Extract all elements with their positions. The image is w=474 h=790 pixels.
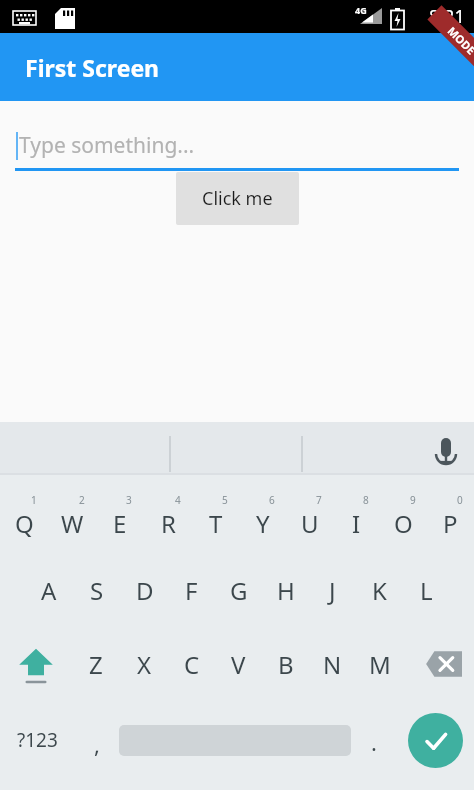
staticText: V [231, 648, 246, 681]
staticText: 4 [175, 493, 181, 507]
button[interactable]: J [309, 553, 356, 627]
staticText: A [41, 574, 57, 607]
staticText: B [278, 648, 294, 681]
staticText: 1 [31, 493, 37, 507]
button[interactable]: 6 [239, 480, 286, 553]
staticText: I [352, 507, 361, 540]
staticText: M [369, 648, 391, 681]
staticText: U [301, 507, 319, 540]
button[interactable]: 7 [286, 480, 333, 553]
button[interactable]: Shift [0, 627, 72, 701]
staticText: MODE [444, 23, 474, 58]
staticText: X [137, 648, 152, 681]
staticText: 7 [316, 493, 322, 507]
staticText: S [90, 574, 104, 607]
staticText: First Screen [25, 52, 160, 83]
button[interactable]: 3 [96, 480, 144, 553]
button[interactable]: 4 [144, 480, 192, 553]
button[interactable]: K [356, 553, 403, 627]
staticText: K [372, 574, 387, 607]
staticText: 2 [79, 493, 85, 507]
staticText: F [185, 574, 198, 607]
staticText: L [420, 574, 433, 607]
staticText: N [323, 648, 342, 681]
button[interactable]: X [120, 627, 168, 701]
button[interactable]: 9 [380, 480, 427, 553]
staticText: H [277, 574, 295, 607]
staticText: Y [256, 507, 270, 540]
staticText: Z [89, 648, 103, 681]
staticText: P [443, 507, 458, 540]
button[interactable]: D [121, 553, 168, 627]
staticText: W [61, 507, 84, 540]
staticText: 3 [126, 493, 132, 507]
button[interactable]: B [262, 627, 309, 701]
button[interactable]: ?123 [0, 701, 74, 779]
button[interactable]: C [168, 627, 215, 701]
staticText: J [329, 574, 336, 607]
button[interactable]: Type something... [0, 122, 474, 168]
staticText: 0 [457, 493, 463, 507]
staticText: Click me [202, 186, 273, 211]
button[interactable]: 0 [427, 480, 474, 553]
button[interactable]: 8 [333, 480, 380, 553]
button[interactable]: Click me [176, 172, 299, 225]
staticText: , [94, 729, 100, 759]
button[interactable]: , [74, 701, 119, 779]
button[interactable]: Z [72, 627, 120, 701]
staticText: 9 [410, 493, 416, 507]
button[interactable]: N [309, 627, 356, 701]
staticText: 6 [269, 493, 275, 507]
button[interactable]: Backspace [403, 627, 474, 701]
staticText: 5 [222, 493, 228, 507]
button[interactable]: H [262, 553, 309, 627]
staticText: T [209, 507, 223, 540]
button[interactable]: F [168, 553, 215, 627]
staticText: Q [15, 507, 34, 540]
button[interactable]: 1 [0, 480, 48, 553]
staticText: D [136, 574, 154, 607]
button[interactable]: 2 [48, 480, 96, 553]
staticText: E [113, 507, 127, 540]
staticText: Type something... [19, 131, 195, 160]
button[interactable]: V [215, 627, 262, 701]
staticText: 8:21 [429, 4, 465, 29]
staticText: 4G [355, 4, 367, 16]
staticText: 8 [363, 493, 369, 507]
button[interactable]: A [25, 553, 73, 627]
button[interactable]: L [403, 553, 450, 627]
staticText: . [371, 727, 377, 757]
staticText: O [394, 507, 413, 540]
button[interactable]: 5 [192, 480, 239, 553]
button[interactable]: Voice input [418, 422, 474, 475]
staticText: R [161, 507, 176, 540]
button[interactable]: S [73, 553, 121, 627]
staticText: ?123 [17, 727, 58, 753]
staticText: G [230, 574, 248, 607]
button[interactable]: Enter [408, 713, 463, 768]
button[interactable]: G [215, 553, 262, 627]
button[interactable]: M [356, 627, 403, 701]
staticText: C [184, 648, 200, 681]
button[interactable]: . [351, 701, 396, 779]
